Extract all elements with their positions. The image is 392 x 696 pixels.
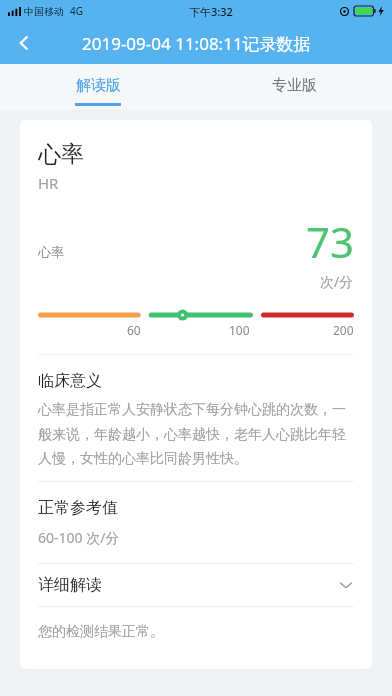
staticText: 临床意义 [38,371,102,391]
staticText: 专业版 [272,76,317,95]
button[interactable]: 解读版 [0,64,196,110]
staticText: 100 [229,322,250,338]
staticText: 60-100 次/分 [38,528,120,547]
button[interactable]: 详细解读 [38,564,354,606]
staticText: 次/分 [320,272,354,291]
staticText: 60 [127,322,141,338]
button[interactable]: Back [0,22,48,64]
button[interactable]: 专业版 [196,64,392,110]
staticText: HR [38,173,59,193]
staticText: 心率 [38,244,64,260]
staticText: 解读版 [76,76,121,95]
staticText: 中国移动 [24,5,64,18]
staticText: 2019-09-04 11:08:11记录数据 [82,32,311,55]
staticText: 详细解读 [38,575,102,595]
staticText: 73 [305,213,354,270]
staticText: 200 [333,322,354,338]
staticText: 正常参考值 [38,498,118,518]
staticText: 4G [70,4,83,18]
staticText: 心率 [38,140,84,169]
staticText: 心率是指正常人安静状态下每分钟心跳的次数，一般来说，年龄越小，心率越快，老年人心… [38,401,354,467]
staticText: 您的检测结果正常。 [38,623,164,641]
staticText: 下午3:32 [189,4,233,19]
